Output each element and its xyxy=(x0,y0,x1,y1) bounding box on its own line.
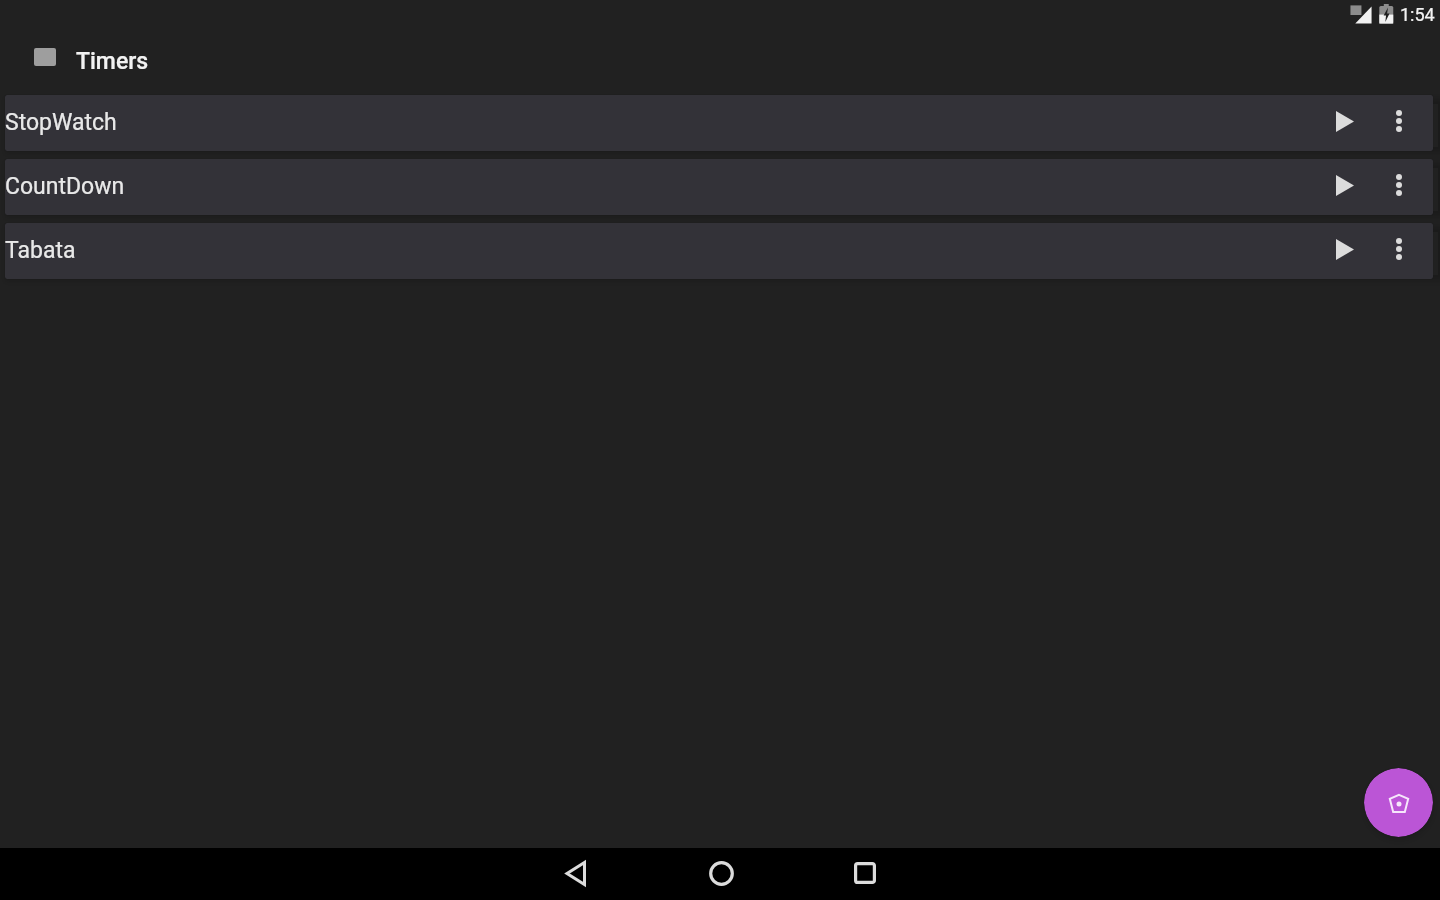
button[interactable]: Start xyxy=(1321,225,1369,273)
staticText: Tabata xyxy=(5,237,76,264)
button[interactable]: CountDown xyxy=(5,159,1433,215)
button[interactable]: More options xyxy=(1375,97,1423,145)
button[interactable]: Add timer xyxy=(1364,768,1433,837)
button[interactable]: Home xyxy=(697,849,745,897)
button[interactable]: Tabata xyxy=(5,223,1433,279)
button[interactable]: More options xyxy=(1375,225,1423,273)
staticText: StopWatch xyxy=(5,109,117,136)
button[interactable]: StopWatch xyxy=(5,95,1433,151)
button[interactable]: Back xyxy=(551,849,599,897)
button[interactable]: Recent apps xyxy=(841,849,889,897)
button[interactable]: Start xyxy=(1321,97,1369,145)
button[interactable]: Start xyxy=(1321,161,1369,209)
staticText: 1:54 xyxy=(1400,4,1435,25)
staticText: Timers xyxy=(76,48,149,75)
button[interactable]: More options xyxy=(1375,161,1423,209)
staticText: CountDown xyxy=(5,173,125,200)
